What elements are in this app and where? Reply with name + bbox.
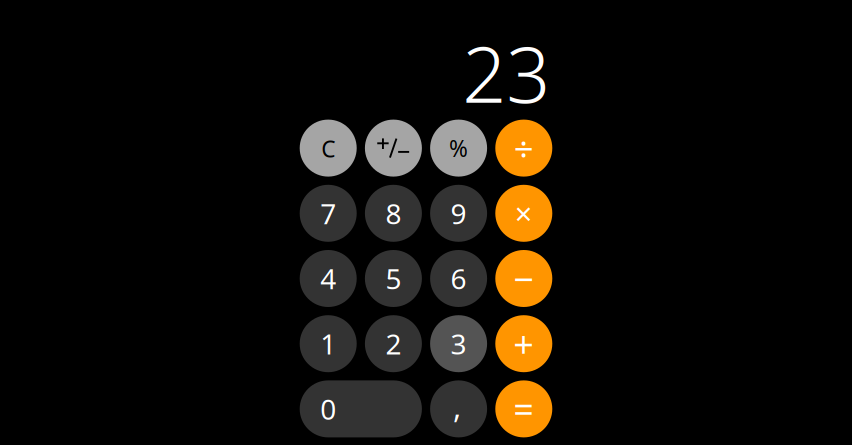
button[interactable]: 5: [365, 250, 422, 307]
button[interactable]: 8: [365, 185, 422, 242]
staticText: +: [513, 320, 534, 368]
staticText: 0: [320, 390, 336, 427]
button[interactable]: 1: [300, 315, 357, 372]
staticText: C: [321, 133, 335, 164]
button[interactable]: Decimal separator: [430, 380, 487, 437]
button[interactable]: Plus: [495, 315, 552, 372]
staticText: 4: [320, 260, 336, 297]
button[interactable]: 0: [300, 380, 422, 437]
staticText: 9: [451, 195, 467, 232]
staticText: ,: [453, 386, 461, 427]
button[interactable]: C: [300, 120, 357, 177]
button[interactable]: 4: [300, 250, 357, 307]
staticText: 2: [385, 325, 401, 362]
button[interactable]: Minus: [495, 250, 552, 307]
staticText: 3: [451, 325, 467, 362]
staticText: ×: [515, 193, 533, 234]
button[interactable]: Multiply: [495, 185, 552, 242]
button[interactable]: 9: [430, 185, 487, 242]
button[interactable]: 6: [430, 250, 487, 307]
staticText: 6: [451, 260, 467, 297]
staticText: ÷: [514, 125, 534, 171]
staticText: =: [513, 385, 534, 433]
staticText: 7: [320, 195, 336, 232]
staticText: %: [449, 133, 468, 163]
button[interactable]: 7: [300, 185, 357, 242]
button[interactable]: Equals: [495, 380, 552, 437]
staticText: 8: [385, 195, 401, 232]
button[interactable]: Divide: [495, 120, 552, 177]
staticText: −: [513, 255, 534, 302]
button[interactable]: 3: [430, 315, 487, 372]
staticText: 23: [462, 21, 550, 124]
staticText: 5: [385, 260, 401, 297]
button[interactable]: Plus Minus: [365, 120, 422, 177]
button[interactable]: 2: [365, 315, 422, 372]
button[interactable]: %: [430, 120, 487, 177]
staticText: 1: [320, 325, 336, 362]
